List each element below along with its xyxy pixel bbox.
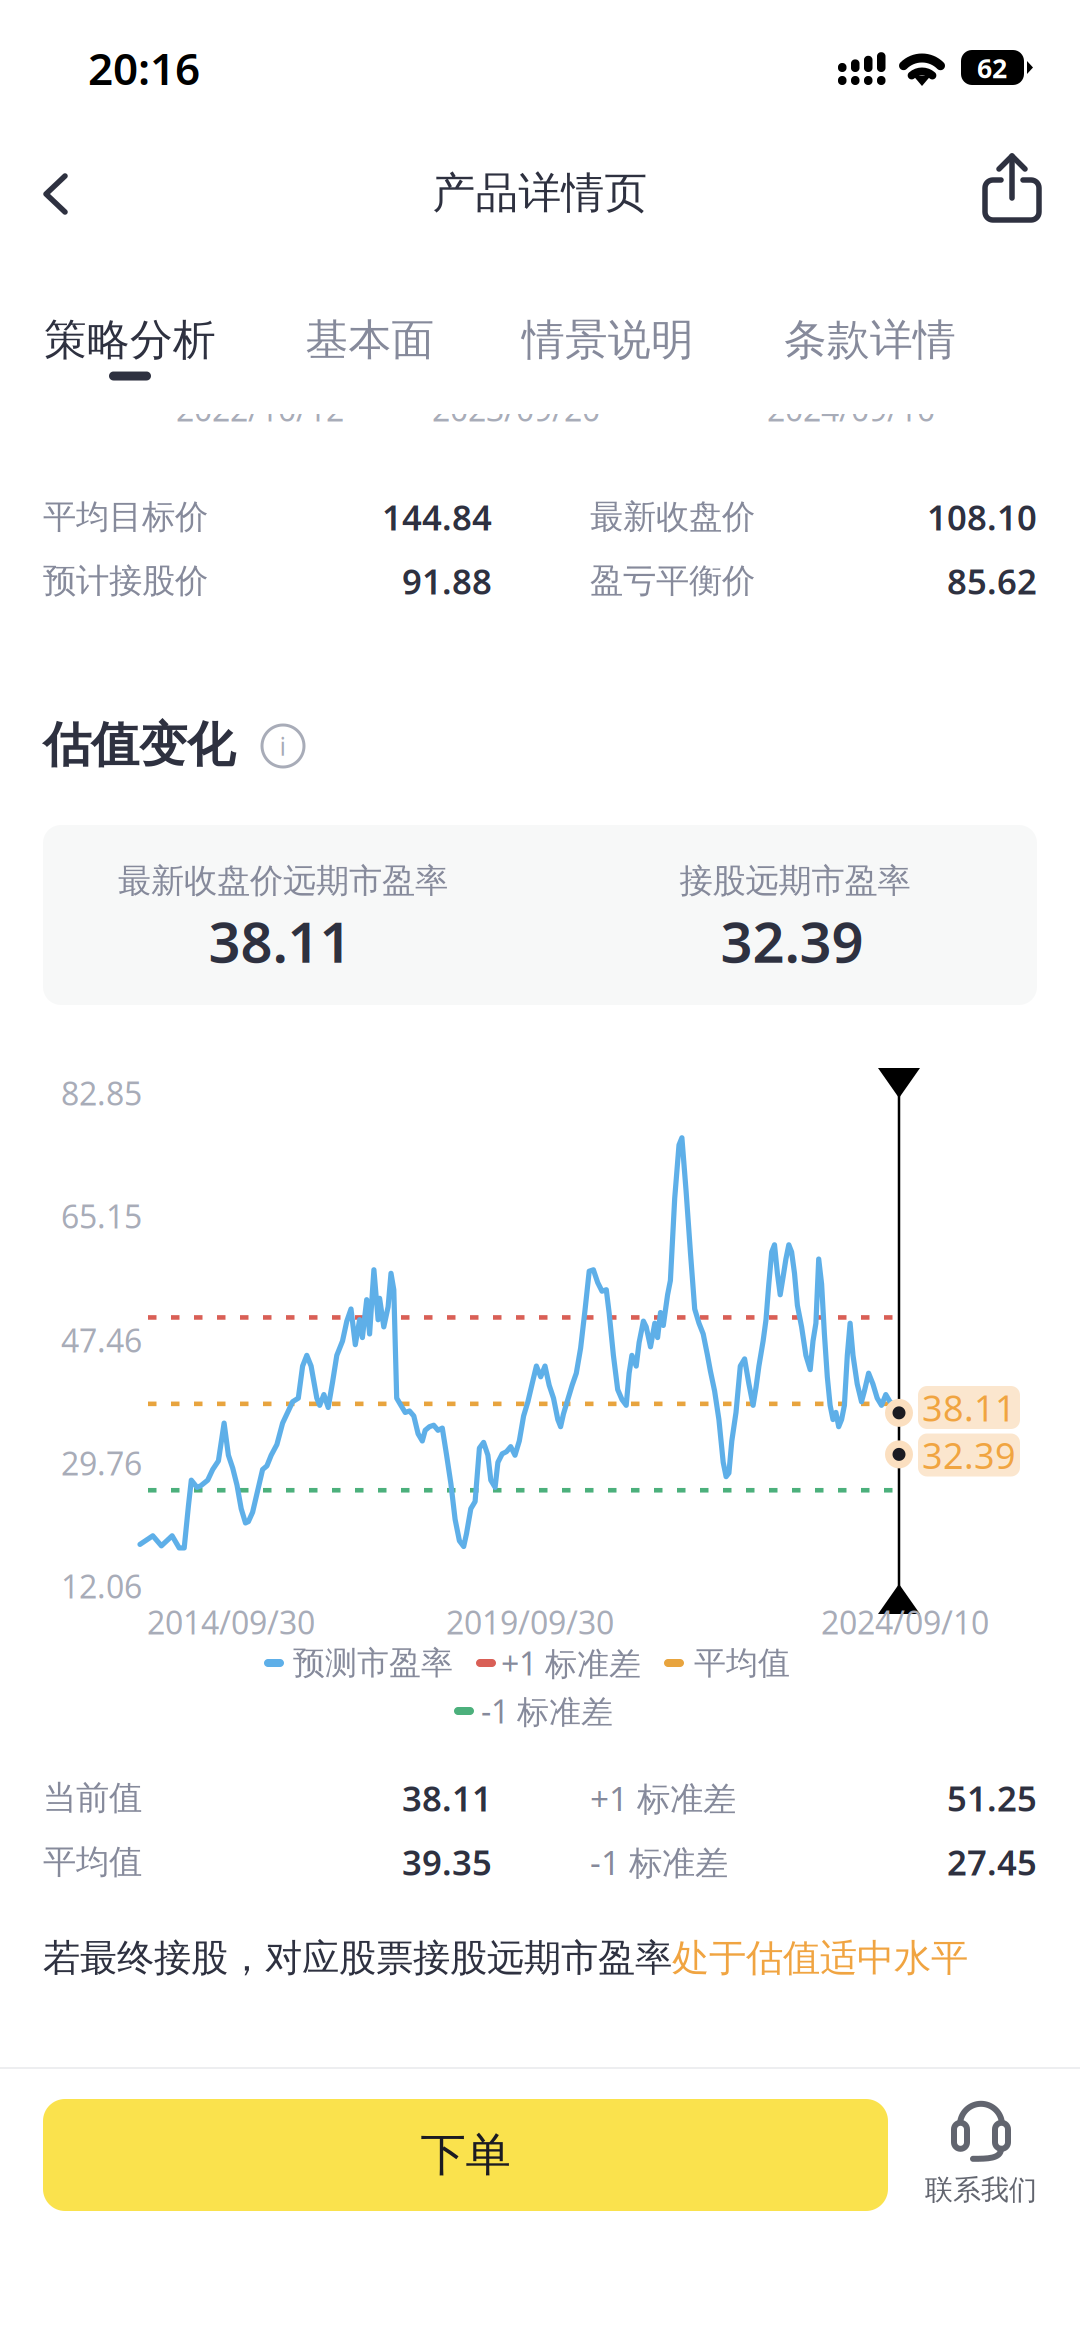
staticText: 144.84 [382,494,492,540]
staticText: 2014/09/30 [147,1601,315,1643]
staticText: 盈亏平衡价 [590,560,755,601]
button[interactable]: Share [957,142,1067,242]
staticText: 91.88 [402,558,492,604]
staticText: 38.11 [208,904,351,978]
button[interactable]: 下单 [43,2099,888,2211]
staticText: 平均目标价 [43,496,208,537]
staticText: 82.85 [61,1072,142,1114]
staticText: 51.25 [947,1775,1037,1821]
staticText: 65.15 [61,1195,142,1237]
staticText: 12.06 [61,1565,142,1607]
staticText: -1 标准差 [481,1690,613,1732]
staticText: 85.62 [947,558,1037,604]
staticText: 2024/09/10 [767,388,935,430]
staticText: 最新收盘价 [590,496,755,537]
staticText: 基本面 [305,314,434,366]
staticText: 62 [977,50,1007,86]
button[interactable]: 基本面 [290,292,450,388]
staticText: 最新收盘价远期市盈率 [118,860,448,901]
staticText: 29.76 [61,1442,142,1484]
staticText: 108.10 [927,494,1037,540]
staticText: 产品详情页 [432,167,647,219]
staticText: 2023/09/20 [432,388,600,430]
staticText: 20:16 [88,39,200,97]
staticText: i [279,729,286,763]
staticText: 条款详情 [784,314,956,366]
button[interactable]: Info [251,714,315,778]
staticText: 2022/10/12 [176,388,344,430]
staticText: 处于估值适中水平 [672,1935,968,1981]
staticText: 2019/09/30 [446,1601,614,1643]
button[interactable]: 联系我们 [906,2095,1056,2215]
staticText: 平均值 [694,1643,790,1683]
button[interactable]: Back [2,144,112,244]
staticText: -1 标准差 [590,1840,728,1884]
staticText: +1 标准差 [501,1642,641,1684]
staticText: 接股远期市盈率 [679,860,910,901]
staticText: 39.35 [402,1839,492,1885]
staticText: 预测市盈率 [293,1643,453,1683]
staticText: 47.46 [61,1319,142,1361]
staticText: 估值变化 [43,715,235,774]
staticText: 32.39 [922,1431,1016,1479]
staticText: +1 标准差 [590,1776,736,1820]
staticText: 下单 [420,2127,510,2183]
button[interactable]: 情景说明 [508,292,708,388]
staticText: 当前值 [43,1777,142,1818]
staticText: 预计接股价 [43,560,208,601]
staticText: 38.11 [402,1775,492,1821]
staticText: 情景说明 [522,314,694,366]
staticText: 平均值 [43,1841,142,1882]
button[interactable]: 条款详情 [770,292,970,388]
staticText: 策略分析 [44,314,216,366]
staticText: 2024/09/10 [821,1601,989,1643]
staticText: 38.11 [922,1384,1016,1431]
staticText: 联系我们 [925,2173,1037,2207]
staticText: 32.39 [720,904,863,978]
staticText: 27.45 [947,1839,1037,1885]
staticText: 若最终接股，对应股票接股远期市盈率 [43,1935,672,1981]
button[interactable]: 策略分析 [30,292,230,388]
